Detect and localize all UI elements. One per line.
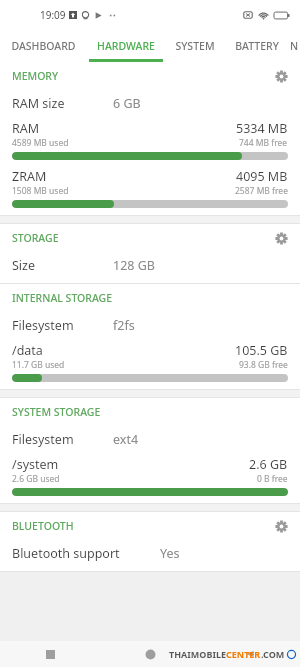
staticText: MEMORY (12, 69, 59, 83)
staticText: RAM size (12, 95, 65, 112)
staticText: CENTER (226, 648, 261, 660)
button[interactable]: BATTERY (225, 30, 289, 62)
staticText: 1508 MB used (12, 185, 69, 197)
staticText: .COM (261, 648, 285, 660)
staticText: Filesystem (12, 431, 74, 448)
staticText: ext4 (113, 431, 139, 448)
staticText: BLUETOOTH (12, 519, 74, 533)
button[interactable]: BLUETOOTH settings (268, 513, 294, 539)
staticText: Filesystem (12, 317, 74, 334)
staticText: SYSTEM (175, 39, 215, 53)
button[interactable]: Home (130, 641, 170, 667)
staticText: 105.5 GB (235, 342, 288, 359)
button[interactable]: RAM (0, 116, 300, 160)
staticText: 2.6 GB (249, 456, 288, 473)
button[interactable]: Back (230, 641, 270, 667)
staticText: 19:09 (40, 8, 66, 22)
staticText: Size (12, 257, 36, 274)
button[interactable]: N (289, 30, 300, 62)
staticText: BATTERY (235, 39, 279, 53)
staticText: 128 GB (113, 257, 155, 274)
staticText: 4589 MB used (12, 137, 69, 149)
button[interactable]: /data (0, 338, 300, 382)
staticText: 6 GB (113, 95, 141, 112)
button[interactable]: Size (0, 252, 300, 278)
button[interactable]: Recent apps (30, 641, 70, 667)
button[interactable]: RAM size (0, 90, 300, 116)
staticText: 744 MB free (239, 137, 288, 149)
button[interactable]: /system (0, 452, 300, 496)
staticText: /data (12, 342, 43, 359)
button[interactable]: Filesystem (0, 426, 300, 452)
button[interactable]: MEMORY settings (268, 63, 294, 89)
staticText: Bluetooth support (12, 545, 120, 562)
staticText: 0 B free (257, 473, 288, 485)
staticText: 11.7 GB used (12, 359, 65, 371)
staticText: 2587 MB free (235, 185, 288, 197)
button[interactable]: SYSTEM (165, 30, 225, 62)
staticText: 2.6 GB used (12, 473, 60, 485)
button[interactable]: STORAGE settings (268, 225, 294, 251)
staticText: SYSTEM STORAGE (12, 405, 101, 419)
button[interactable]: Filesystem (0, 312, 300, 338)
staticText: /system (12, 456, 59, 473)
staticText: THAIMOBILE (169, 648, 226, 660)
button[interactable]: DASHBOARD (0, 30, 87, 62)
staticText: DASHBOARD (11, 39, 76, 53)
staticText: ZRAM (12, 168, 47, 185)
staticText: RAM (12, 120, 40, 137)
button[interactable]: ZRAM (0, 164, 300, 208)
staticText: 4095 MB (236, 168, 288, 185)
staticText: Yes (160, 545, 180, 562)
button[interactable]: HARDWARE (87, 30, 165, 62)
staticText: N (290, 39, 299, 53)
button[interactable]: Bluetooth support (0, 540, 300, 566)
staticText: STORAGE (12, 231, 59, 245)
staticText: INTERNAL STORAGE (12, 291, 113, 305)
staticText: 5334 MB (236, 120, 288, 137)
staticText: f2fs (113, 317, 135, 334)
staticText: 93.8 GB free (239, 359, 288, 371)
staticText: HARDWARE (97, 39, 155, 53)
